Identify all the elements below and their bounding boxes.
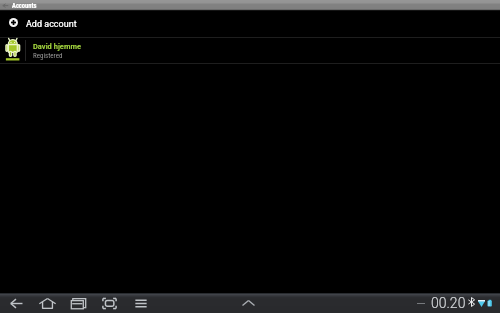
button[interactable]: Screenshot xyxy=(95,293,124,313)
other: Back xyxy=(2,2,9,9)
button[interactable]: Back xyxy=(0,0,500,12)
button[interactable]: Status xyxy=(404,293,500,313)
button[interactable]: Add account xyxy=(0,12,500,37)
button[interactable]: Notifications xyxy=(237,293,260,313)
button[interactable]: Menu xyxy=(126,293,155,313)
staticText: David hjemme xyxy=(33,42,81,51)
staticText: 00.20 xyxy=(431,295,466,311)
button[interactable]: Home xyxy=(33,293,62,313)
button[interactable]: Recent apps xyxy=(64,293,93,313)
button[interactable]: Back xyxy=(2,293,31,313)
staticText: Add account xyxy=(26,19,77,30)
button[interactable]: David hjemme xyxy=(0,38,500,63)
staticText: Accounts xyxy=(12,2,37,10)
staticText: Registered xyxy=(33,52,63,60)
